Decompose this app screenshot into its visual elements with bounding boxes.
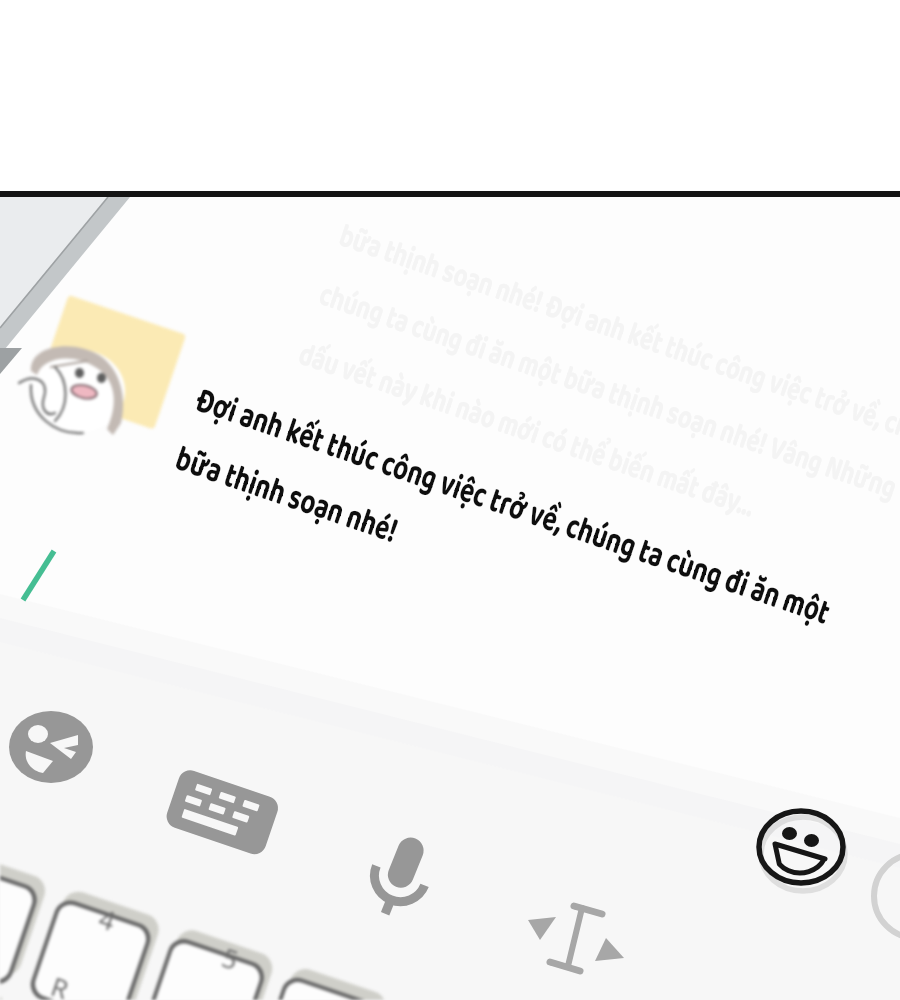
button[interactable]: Move cursor bbox=[524, 896, 636, 982]
staticText: 5 bbox=[218, 939, 243, 977]
staticText: Đợi anh kết thúc công việc trở về, chúng… bbox=[167, 372, 838, 701]
button[interactable]: Sticker bbox=[755, 804, 849, 890]
button[interactable]: Keyboard bbox=[164, 764, 284, 858]
staticText: 4 bbox=[95, 900, 120, 938]
button[interactable]: Đợi anh kết thúc công việc trở về, chúng… bbox=[167, 372, 838, 701]
button[interactable]: Emoji bbox=[6, 705, 98, 791]
button[interactable]: Voice input bbox=[358, 830, 444, 920]
staticText: bữa thịnh soạn nhé! Đợi anh kết thúc côn… bbox=[291, 210, 900, 627]
staticText: R bbox=[47, 968, 74, 1000]
